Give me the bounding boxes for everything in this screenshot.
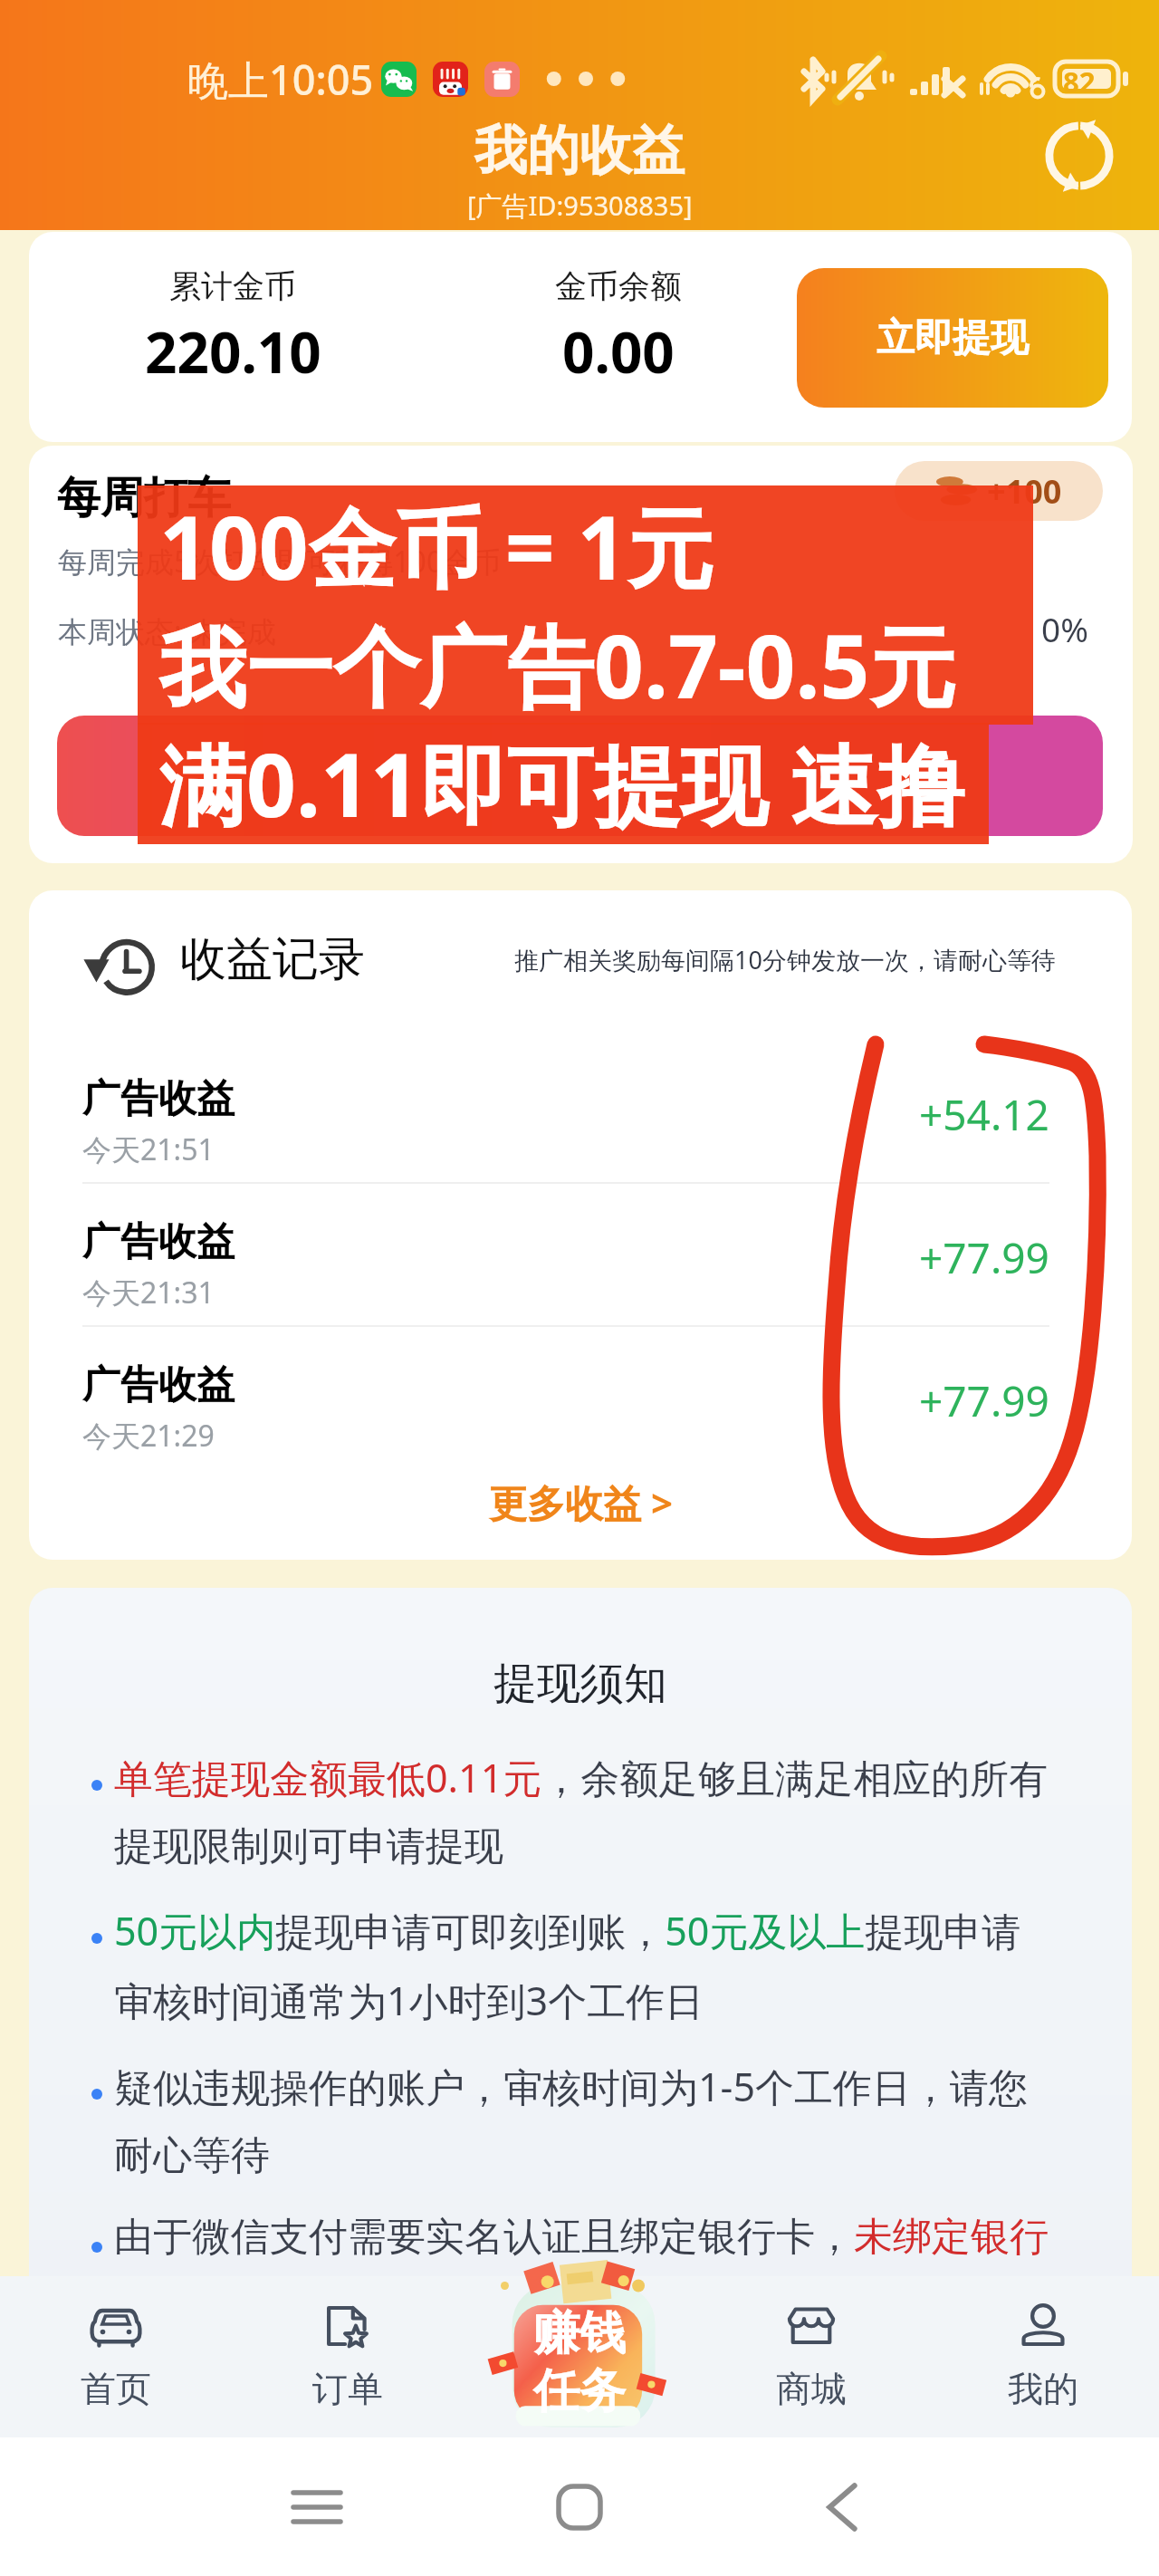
staticText: 100金币 = 1元 bbox=[159, 486, 714, 605]
staticText: 首页 bbox=[81, 2367, 151, 2411]
staticText: 晚上10:05 bbox=[187, 52, 374, 107]
staticText: 收益记录 bbox=[180, 930, 365, 988]
button[interactable]: 广告收益 bbox=[82, 1068, 1049, 1211]
staticText: 50元以内提现申请可即刻到账，50元及以上提现申请审核时间通常为1小时到3个工作… bbox=[114, 1904, 1057, 2027]
staticText: 满0.11即可提现 速撸 bbox=[159, 724, 964, 842]
button[interactable]: 广告收益 bbox=[82, 1211, 1049, 1354]
staticText: 任务 bbox=[533, 2362, 626, 2420]
staticText: 220.10 bbox=[145, 313, 321, 389]
staticText: 本周状态: 未完成 bbox=[58, 611, 276, 651]
button[interactable]: 我的 bbox=[927, 2276, 1159, 2437]
staticText: +77.99 bbox=[919, 1229, 1049, 1286]
button[interactable]: Recents bbox=[244, 2437, 389, 2576]
staticText: 我一个广告0.7-0.5元 bbox=[159, 605, 957, 724]
staticText: 我的收益 bbox=[474, 118, 685, 184]
staticText: +100 bbox=[987, 469, 1062, 514]
button[interactable]: 首页 bbox=[0, 2276, 232, 2437]
staticText: 提现须知 bbox=[493, 1657, 667, 1711]
staticText: 赚钱 bbox=[533, 2304, 626, 2362]
staticText: 疑似违规操作的账户，审核时间为1-5个工作日，请您耐心等待 bbox=[114, 2060, 1057, 2180]
button[interactable]: 商城 bbox=[695, 2276, 927, 2437]
staticText: 我的 bbox=[1008, 2367, 1078, 2411]
staticText: 推广相关奖励每间隔10分钟发放一次，请耐心等待 bbox=[514, 943, 1056, 976]
staticText: 每周完成5次打车即可获得100金币 bbox=[58, 542, 502, 582]
staticText: 今天21:51 bbox=[82, 1129, 215, 1169]
staticText: 单笔提现金额最低0.11元，余额足够且满足相应的所有提现限制则可申请提现 bbox=[114, 1751, 1057, 1871]
button[interactable]: Back bbox=[770, 2437, 915, 2576]
button[interactable]: 更多收益 > bbox=[474, 1471, 687, 1533]
staticText: 由于微信支付需要实名认证且绑定银行卡，未绑定银行卡将无法提现 bbox=[114, 2213, 1057, 2312]
staticText: 订单 bbox=[312, 2367, 383, 2411]
button[interactable] bbox=[57, 716, 1103, 836]
staticText: 商城 bbox=[776, 2367, 847, 2411]
staticText: 0.00 bbox=[562, 313, 675, 389]
staticText: 金币余额 bbox=[555, 266, 682, 306]
staticText: 0% bbox=[1041, 606, 1088, 651]
staticText: +77.99 bbox=[919, 1372, 1049, 1429]
staticText: 今天21:29 bbox=[82, 1416, 215, 1456]
staticText: 广告收益 bbox=[82, 1075, 235, 1123]
button[interactable]: 立即提现 bbox=[797, 268, 1108, 408]
staticText: 累计金币 bbox=[169, 266, 296, 306]
staticText: +54.12 bbox=[919, 1086, 1049, 1143]
button[interactable]: 赚钱任务 bbox=[464, 2252, 695, 2446]
staticText: 广告收益 bbox=[82, 1218, 235, 1266]
staticText: 更多收益 > bbox=[489, 1476, 673, 1528]
staticText: 82 bbox=[1063, 62, 1096, 101]
button[interactable]: 广告收益 bbox=[82, 1354, 1049, 1497]
staticText: 立即提现 bbox=[876, 314, 1029, 362]
button[interactable]: Home bbox=[507, 2437, 652, 2576]
staticText: 广告收益 bbox=[82, 1361, 235, 1409]
button[interactable]: 订单 bbox=[232, 2276, 464, 2437]
staticText: [广告ID:95308835] bbox=[467, 187, 693, 224]
staticText: 每周打车 bbox=[57, 471, 231, 525]
staticText: 今天21:31 bbox=[82, 1273, 215, 1312]
button[interactable]: Refresh bbox=[1036, 112, 1123, 199]
